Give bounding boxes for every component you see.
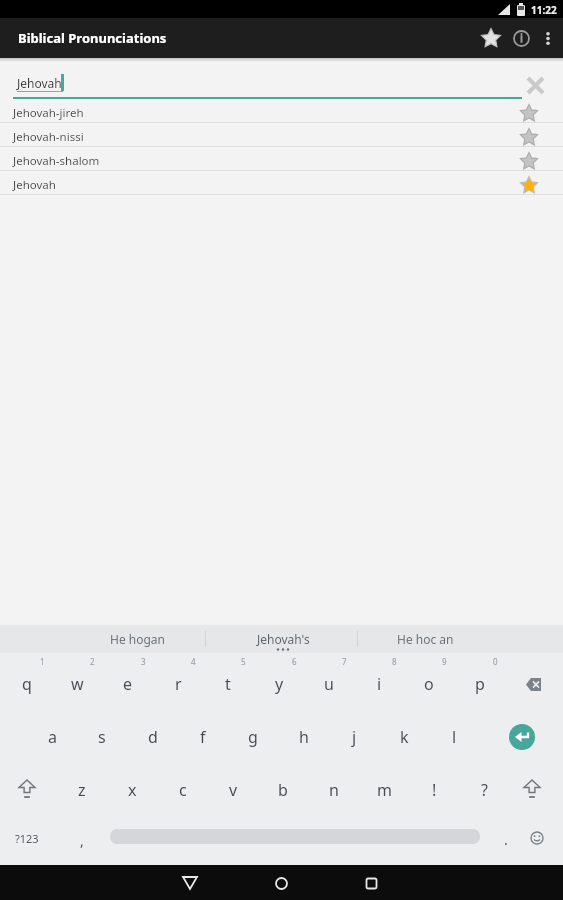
staticText: f [200, 726, 206, 748]
button[interactable]: v [208, 764, 258, 816]
button[interactable]: e [103, 658, 153, 710]
button[interactable] [177, 870, 203, 896]
staticText: y [275, 673, 284, 695]
staticText: 0 [493, 656, 498, 667]
button[interactable]: n [309, 764, 359, 816]
staticText: 7 [342, 656, 347, 667]
button[interactable]: y [254, 658, 304, 710]
button[interactable]: z [57, 764, 107, 816]
button[interactable]: s [77, 711, 127, 763]
staticText: p [475, 673, 485, 695]
button[interactable]: q [2, 658, 52, 710]
button[interactable]: x [107, 764, 157, 816]
button[interactable] [268, 870, 294, 896]
staticText: u [324, 673, 334, 695]
button[interactable]: , [57, 814, 107, 866]
button[interactable] [524, 825, 550, 851]
staticText: r [175, 673, 182, 695]
staticText: 9 [442, 656, 447, 667]
staticText: 3 [141, 656, 146, 667]
button[interactable]: u [304, 658, 354, 710]
staticText: , [80, 831, 84, 850]
staticText: He hoc an [397, 631, 454, 647]
staticText: m [377, 779, 392, 801]
staticText: s [98, 726, 106, 748]
button[interactable]: p [455, 658, 505, 710]
staticText: l [452, 726, 457, 748]
button[interactable] [520, 176, 538, 194]
button[interactable]: Jehovah's [213, 625, 353, 652]
button[interactable]: He hoc an [355, 625, 495, 652]
button[interactable] [520, 104, 538, 122]
staticText: Jehovah's [257, 631, 310, 647]
button[interactable] [506, 764, 558, 816]
button[interactable]: d [128, 711, 178, 763]
button[interactable]: b [258, 764, 308, 816]
button[interactable]: He hogan [67, 625, 207, 652]
staticText: Jehovah-shalom [13, 153, 100, 169]
button[interactable]: t [203, 658, 253, 710]
button[interactable] [1, 764, 53, 816]
button[interactable]: . [481, 813, 531, 865]
button[interactable]: Jehovah [0, 58, 563, 99]
staticText: ! [432, 779, 437, 801]
button[interactable]: g [228, 711, 278, 763]
button[interactable]: l [429, 711, 479, 763]
button[interactable] [358, 870, 384, 896]
staticText: 1 [40, 656, 45, 667]
staticText: v [229, 779, 238, 801]
staticText: 11:22 [531, 3, 557, 17]
staticText: . [504, 830, 508, 849]
staticText: Biblical Pronunciations [18, 29, 167, 47]
button[interactable] [496, 711, 548, 763]
button[interactable]: a [27, 711, 77, 763]
staticText: Jehovah [17, 75, 62, 91]
staticText: n [329, 779, 339, 801]
button[interactable]: i [354, 658, 404, 710]
staticText: q [22, 673, 32, 695]
staticText: ?123 [15, 831, 39, 846]
button[interactable]: Jehovah-shalom [0, 147, 563, 170]
staticText: 4 [191, 656, 196, 667]
button[interactable]: Jehovah-nissi [0, 123, 563, 146]
button[interactable]: c [158, 764, 208, 816]
button[interactable]: w [52, 658, 102, 710]
staticText: i [377, 673, 382, 695]
button[interactable]: f [178, 711, 228, 763]
button[interactable] [475, 22, 507, 54]
button[interactable]: k [379, 711, 429, 763]
staticText: g [248, 726, 258, 748]
button[interactable]: ?123 [2, 812, 52, 864]
staticText: z [78, 779, 86, 801]
button[interactable]: m [359, 764, 409, 816]
button[interactable]: r [153, 658, 203, 710]
button[interactable]: ? [459, 764, 509, 816]
button[interactable]: ! [409, 764, 459, 816]
staticText: He hogan [110, 631, 165, 647]
button[interactable]: Jehovah [0, 171, 563, 194]
button[interactable]: Jehovah-jireh [0, 99, 563, 122]
staticText: b [278, 779, 288, 801]
staticText: c [179, 779, 187, 801]
staticText: t [225, 673, 231, 695]
staticText: Jehovah [13, 177, 56, 193]
staticText: w [71, 673, 84, 695]
staticText: h [299, 726, 309, 748]
staticText: j [352, 726, 357, 748]
staticText: ? [481, 779, 488, 801]
button[interactable]: h [279, 711, 329, 763]
button[interactable] [520, 128, 538, 146]
staticText: x [128, 779, 137, 801]
button[interactable] [535, 25, 561, 51]
button[interactable]: o [404, 658, 454, 710]
button[interactable]: j [329, 711, 379, 763]
button[interactable] [507, 24, 535, 52]
staticText: Jehovah-nissi [13, 129, 84, 145]
button[interactable] [520, 152, 538, 170]
staticText: 5 [241, 656, 246, 667]
button[interactable] [508, 658, 560, 710]
staticText: 8 [392, 656, 397, 667]
button[interactable] [524, 74, 546, 96]
staticText: k [400, 726, 409, 748]
